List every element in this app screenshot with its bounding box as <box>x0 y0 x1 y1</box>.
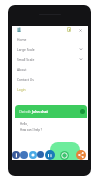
staticText: Hello, <box>20 122 28 126</box>
button[interactable]: Cart <box>67 27 71 32</box>
staticText: How can I help ? <box>20 128 43 132</box>
button[interactable]: Large Scale <box>12 44 88 54</box>
button[interactable]: Home <box>12 34 88 44</box>
button[interactable]: Close chat <box>80 109 85 114</box>
staticText: Contact Us <box>17 77 34 81</box>
button[interactable]: Close menu <box>78 28 83 33</box>
button[interactable]: Messenger <box>37 151 44 158</box>
button[interactable]: WhatsApp <box>60 151 69 160</box>
staticText: About <box>17 67 27 71</box>
button[interactable]: Twitter <box>29 151 37 159</box>
button[interactable]: Login <box>12 84 88 94</box>
staticText: Chat with <box>19 110 32 114</box>
button[interactable]: Logo <box>17 27 21 32</box>
staticText: Large Scale <box>17 47 35 51</box>
button[interactable]: Hello, <box>16 118 86 137</box>
staticText: Login <box>17 87 26 91</box>
staticText: John chat <box>32 109 48 114</box>
button[interactable]: Chat <box>50 142 80 160</box>
button[interactable]: Contact Us <box>12 74 88 84</box>
staticText: Home <box>17 37 27 41</box>
button[interactable]: About <box>12 64 88 74</box>
button[interactable]: Chat with <box>15 105 87 118</box>
staticText: Small Scale <box>17 57 35 61</box>
button[interactable]: Facebook <box>12 151 20 159</box>
button[interactable]: LinkedIn <box>45 150 55 160</box>
button[interactable]: Share on Facebook <box>20 151 28 159</box>
button[interactable]: Share <box>76 150 86 160</box>
button[interactable]: Small Scale <box>12 54 88 64</box>
